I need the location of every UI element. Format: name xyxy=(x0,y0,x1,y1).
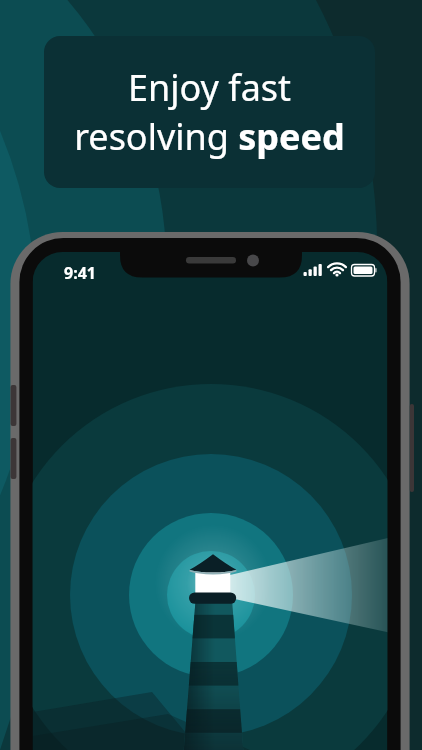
staticText: Enjoy fast resolving speed xyxy=(44,63,375,161)
button[interactable]: Enjoy fast resolving speed xyxy=(44,36,375,188)
staticText: 9:41 xyxy=(64,262,96,284)
